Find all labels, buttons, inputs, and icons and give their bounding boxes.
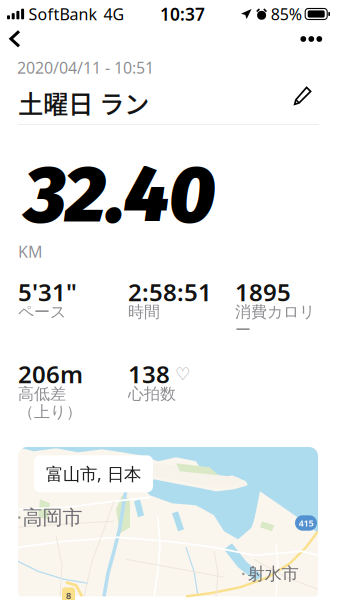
staticText: KM bbox=[18, 241, 43, 262]
staticText: 206m bbox=[18, 358, 83, 390]
staticText: 8 bbox=[66, 589, 71, 600]
staticText: ♡ bbox=[175, 364, 191, 384]
staticText: 1895 bbox=[235, 276, 291, 308]
staticText: 土曜日 ラン bbox=[18, 84, 149, 121]
staticText: 5'31" bbox=[18, 276, 77, 308]
staticText: ー bbox=[235, 320, 251, 340]
staticText: 415 bbox=[298, 517, 313, 529]
staticText: 高低差 bbox=[18, 384, 66, 404]
staticText: 2020/04/11 - 10:51 bbox=[17, 57, 154, 78]
button[interactable]: Back bbox=[9, 26, 49, 52]
staticText: 高岡市 bbox=[23, 505, 83, 530]
staticText: 138 bbox=[128, 358, 170, 390]
staticText: 射水市 bbox=[248, 563, 299, 585]
button[interactable]: Edit bbox=[290, 84, 316, 108]
staticText: 時間 bbox=[128, 302, 160, 322]
staticText: 心拍数 bbox=[128, 384, 176, 404]
staticText: 4G bbox=[104, 3, 125, 25]
staticText: （上り） bbox=[18, 402, 82, 422]
staticText: 消費カロリ bbox=[235, 302, 315, 322]
staticText: ペース bbox=[18, 302, 66, 322]
button[interactable]: More bbox=[300, 31, 326, 47]
staticText: 10:37 bbox=[160, 2, 205, 25]
staticText: 32.40 bbox=[25, 148, 215, 242]
staticText: 85% bbox=[271, 3, 302, 25]
staticText: SoftBank bbox=[29, 3, 98, 25]
staticText: 2:58:51 bbox=[128, 276, 212, 308]
staticText: 富山市, 日本 bbox=[46, 462, 141, 485]
